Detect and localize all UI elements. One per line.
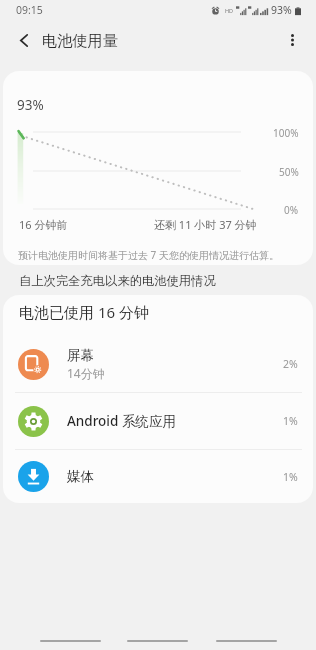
button[interactable]: 屏幕	[3, 336, 313, 392]
button[interactable]: 媒体	[3, 450, 313, 503]
button[interactable]: Back	[216, 640, 277, 642]
staticText: 0%	[284, 203, 299, 217]
staticText: 预计电池使用时间将基于过去 7 天您的使用情况进行估算。	[18, 248, 279, 262]
staticText: 93%	[17, 96, 44, 114]
staticText: 还剩 11 小时 37 分钟	[154, 217, 257, 232]
staticText: 50%	[279, 165, 299, 179]
button[interactable]: Android 系统应用	[3, 393, 313, 449]
staticText: 1%	[283, 414, 298, 428]
staticText: 媒体	[67, 468, 94, 485]
staticText: 1%	[283, 470, 298, 484]
staticText: 2%	[283, 357, 298, 371]
staticText: Android 系统应用	[67, 412, 176, 430]
staticText: 电池使用量	[42, 31, 118, 50]
staticText: 14分钟	[67, 365, 105, 381]
button[interactable]: Home	[127, 640, 188, 642]
staticText: 100%	[273, 126, 299, 140]
staticText: 93%	[271, 3, 292, 17]
button[interactable]: More options	[274, 22, 310, 58]
button[interactable]: Recents	[40, 640, 101, 642]
staticText: 09:15	[16, 3, 43, 17]
staticText: 自上次完全充电以来的电池使用情况	[19, 273, 216, 288]
staticText: 16 分钟前	[19, 217, 68, 232]
staticText: 电池已使用 16 分钟	[19, 302, 149, 322]
staticText: HD	[225, 7, 234, 14]
staticText: 屏幕	[67, 347, 94, 364]
button[interactable]: Back	[6, 22, 42, 58]
